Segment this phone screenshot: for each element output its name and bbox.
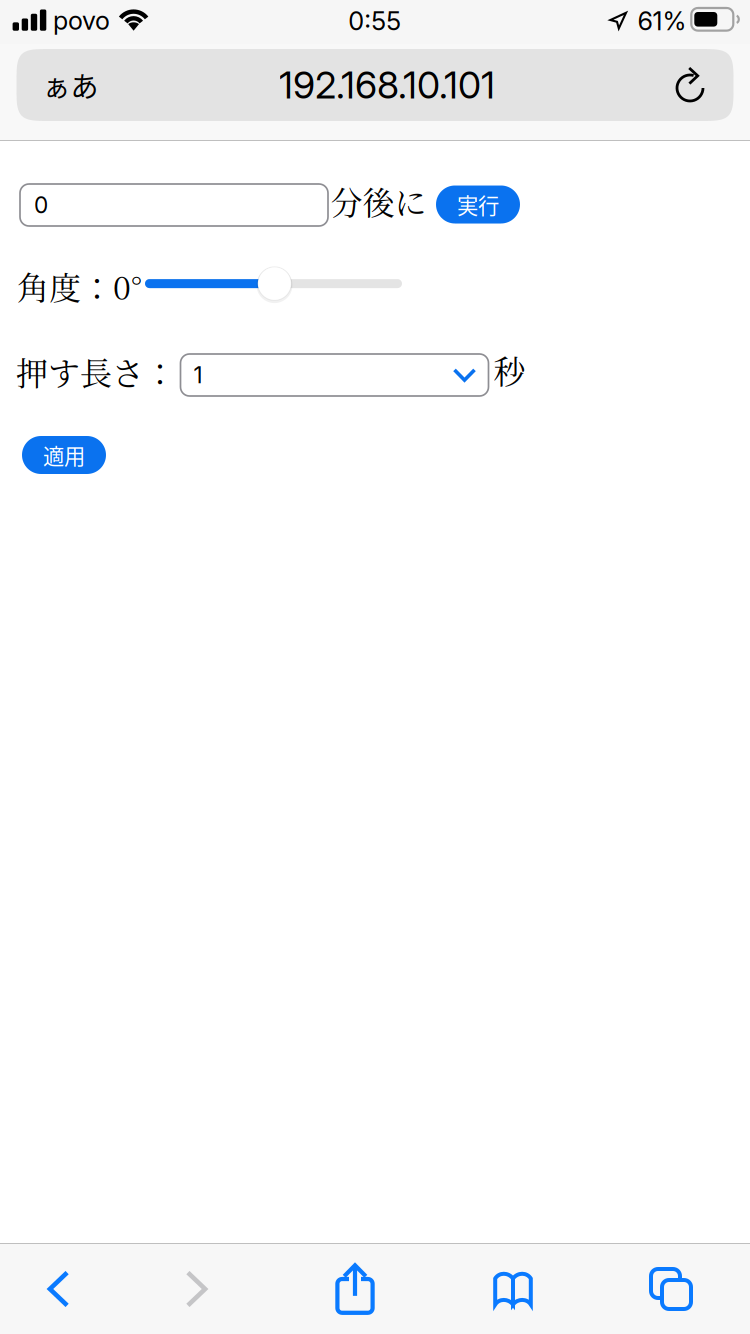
staticText: 1 — [193, 361, 202, 389]
button[interactable]: 1 — [180, 354, 488, 396]
button[interactable]: Tabs — [592, 1244, 750, 1334]
staticText: 適用 — [43, 440, 85, 470]
staticText: 実行 — [457, 189, 499, 220]
staticText: 0 — [34, 191, 48, 219]
button[interactable]: Forward — [117, 1244, 276, 1334]
staticText: 秒 — [493, 347, 525, 393]
button[interactable]: ぁあ — [16, 49, 733, 121]
staticText: 61% — [637, 6, 686, 36]
staticText: povo — [53, 5, 110, 36]
staticText: 分後に — [330, 178, 426, 224]
staticText: 192.168.10.101 — [279, 62, 495, 108]
button[interactable]: Back — [0, 1244, 117, 1334]
staticText: 押す長さ： — [16, 348, 176, 394]
button[interactable]: Share — [276, 1244, 434, 1334]
button[interactable]: 適用 — [22, 436, 106, 474]
button[interactable]: 実行 — [436, 185, 520, 223]
staticText: ぁあ — [42, 65, 98, 105]
staticText: 角度：0° — [17, 263, 142, 309]
button[interactable]: Bookmarks — [434, 1244, 592, 1334]
staticText: 0:55 — [348, 6, 401, 36]
